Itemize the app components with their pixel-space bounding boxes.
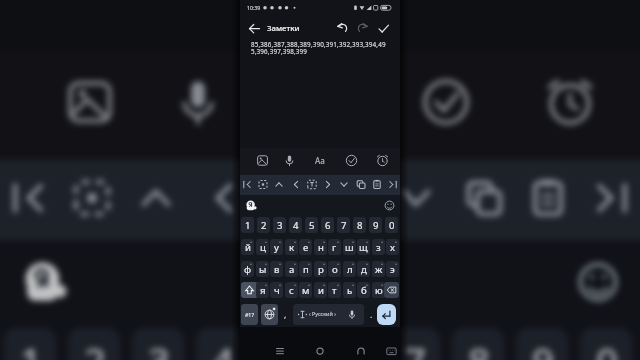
button[interactable]: 5: [305, 217, 318, 233]
button[interactable]: 1: [241, 217, 254, 233]
button[interactable]: [282, 153, 297, 168]
button[interactable]: 6: [321, 217, 334, 233]
button[interactable]: [245, 199, 257, 212]
button[interactable]: [356, 21, 369, 34]
button[interactable]: 9: [369, 217, 382, 233]
button[interactable]: л: [343, 261, 356, 277]
button[interactable]: 6: [324, 328, 376, 360]
button[interactable]: г: [328, 239, 341, 255]
button[interactable]: [344, 153, 359, 168]
button[interactable]: [385, 175, 401, 194]
button[interactable]: [384, 160, 448, 236]
button[interactable]: т: [328, 282, 341, 298]
button[interactable]: [313, 153, 329, 168]
button[interactable]: [239, 175, 255, 194]
button[interactable]: [580, 160, 640, 236]
button[interactable]: х: [386, 239, 399, 255]
button[interactable]: [353, 175, 369, 194]
button[interactable]: [540, 72, 600, 132]
button[interactable]: [192, 160, 256, 236]
button[interactable]: [336, 21, 349, 34]
button[interactable]: а: [285, 261, 298, 277]
button[interactable]: щ: [357, 239, 370, 255]
button[interactable]: ь: [343, 282, 356, 298]
button[interactable]: д: [357, 261, 370, 277]
button[interactable]: с: [285, 282, 298, 298]
button[interactable]: [336, 175, 352, 194]
button[interactable]: ж: [372, 261, 385, 277]
button[interactable]: [241, 282, 258, 298]
button[interactable]: я: [256, 282, 269, 298]
button[interactable]: 4: [196, 328, 248, 360]
button[interactable]: [293, 304, 364, 325]
button[interactable]: [248, 22, 261, 35]
button[interactable]: [304, 175, 320, 194]
button[interactable]: 2: [68, 328, 120, 360]
button[interactable]: [255, 153, 270, 168]
button[interactable]: б: [357, 282, 370, 298]
button[interactable]: .: [366, 304, 376, 325]
button[interactable]: [354, 344, 368, 358]
button[interactable]: [377, 22, 390, 35]
button[interactable]: [288, 175, 304, 194]
button[interactable]: [383, 199, 396, 212]
button[interactable]: [375, 153, 390, 168]
button[interactable]: [320, 160, 384, 236]
button[interactable]: [320, 175, 336, 194]
button[interactable]: 7: [388, 328, 440, 360]
button[interactable]: и: [314, 282, 327, 298]
button[interactable]: п: [299, 261, 312, 277]
button[interactable]: 1: [4, 328, 56, 360]
button[interactable]: м: [299, 282, 312, 298]
button[interactable]: ю: [372, 282, 385, 298]
button[interactable]: 0: [580, 328, 632, 360]
button[interactable]: [385, 346, 398, 357]
button[interactable]: 8: [353, 217, 366, 233]
button[interactable]: [516, 160, 580, 236]
button[interactable]: [60, 72, 120, 132]
button[interactable]: в: [270, 261, 283, 277]
button[interactable]: ф: [241, 261, 254, 277]
button[interactable]: 2: [257, 217, 270, 233]
button[interactable]: [256, 160, 320, 236]
button[interactable]: ,: [280, 304, 291, 325]
button[interactable]: ш: [343, 239, 356, 255]
button[interactable]: [0, 160, 60, 236]
button[interactable]: у: [270, 239, 283, 255]
button[interactable]: ы: [256, 261, 269, 277]
button[interactable]: [377, 304, 396, 325]
button[interactable]: [273, 344, 287, 358]
button[interactable]: э: [386, 261, 399, 277]
button[interactable]: [124, 160, 188, 236]
button[interactable]: ц: [256, 239, 269, 255]
button[interactable]: й: [241, 239, 254, 255]
button[interactable]: [416, 72, 476, 132]
button[interactable]: е: [299, 239, 312, 255]
button[interactable]: 7: [337, 217, 350, 233]
button[interactable]: з: [372, 239, 385, 255]
button[interactable]: [60, 160, 124, 236]
button[interactable]: [255, 175, 271, 194]
button[interactable]: р: [314, 261, 327, 277]
button[interactable]: [369, 175, 385, 194]
button[interactable]: #17: [241, 304, 258, 325]
button[interactable]: к: [285, 239, 298, 255]
button[interactable]: 3: [132, 328, 184, 360]
button[interactable]: [313, 344, 327, 358]
button[interactable]: [271, 175, 287, 194]
button[interactable]: [261, 304, 278, 325]
button[interactable]: [20, 256, 68, 308]
button[interactable]: [168, 72, 228, 132]
button[interactable]: [452, 160, 516, 236]
button[interactable]: 0: [385, 217, 398, 233]
button[interactable]: 4: [289, 217, 302, 233]
button[interactable]: 8: [452, 328, 504, 360]
button[interactable]: [384, 282, 399, 298]
button[interactable]: [572, 256, 624, 308]
button[interactable]: н: [314, 239, 327, 255]
button[interactable]: 3: [273, 217, 286, 233]
button[interactable]: ч: [270, 282, 283, 298]
button[interactable]: 9: [516, 328, 568, 360]
button[interactable]: о: [328, 261, 341, 277]
